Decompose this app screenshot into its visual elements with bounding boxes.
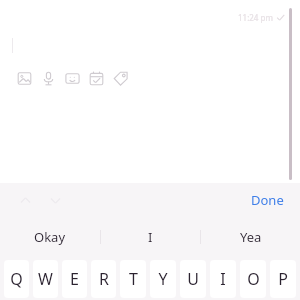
staticText: U — [187, 268, 199, 290]
button[interactable]: E — [62, 260, 87, 298]
staticText: I — [220, 268, 226, 290]
button[interactable]: Yea — [201, 216, 300, 258]
button[interactable]: U — [180, 260, 206, 298]
button[interactable]: W — [33, 260, 58, 298]
button[interactable]: Y — [150, 260, 176, 298]
staticText: 11:24 pm — [238, 12, 273, 23]
staticText: W — [38, 268, 53, 290]
button[interactable]: Add photo — [12, 66, 36, 90]
staticText: R — [99, 268, 109, 290]
button[interactable]: Schedule — [84, 66, 108, 90]
button[interactable]: R — [91, 260, 116, 298]
staticText: Y — [158, 268, 168, 290]
staticText: O — [247, 268, 260, 290]
button[interactable]: I — [101, 216, 200, 258]
button[interactable]: Voice message — [36, 66, 60, 90]
staticText: I — [148, 228, 153, 246]
staticText: Q — [10, 268, 23, 290]
button[interactable]: Okay — [0, 216, 100, 258]
button[interactable]: I — [210, 260, 236, 298]
button[interactable]: P — [270, 260, 296, 298]
staticText: Okay — [34, 228, 66, 246]
button[interactable]: O — [240, 260, 266, 298]
button[interactable]: Stickers — [60, 66, 84, 90]
staticText: Yea — [240, 228, 262, 246]
staticText: Done — [251, 191, 284, 209]
button[interactable]: Label — [108, 66, 132, 90]
staticText: P — [278, 268, 288, 290]
staticText: E — [70, 268, 79, 290]
button[interactable]: Done — [245, 187, 290, 213]
button[interactable]: Q — [4, 260, 29, 298]
staticText: T — [129, 268, 138, 290]
button[interactable]: T — [120, 260, 146, 298]
